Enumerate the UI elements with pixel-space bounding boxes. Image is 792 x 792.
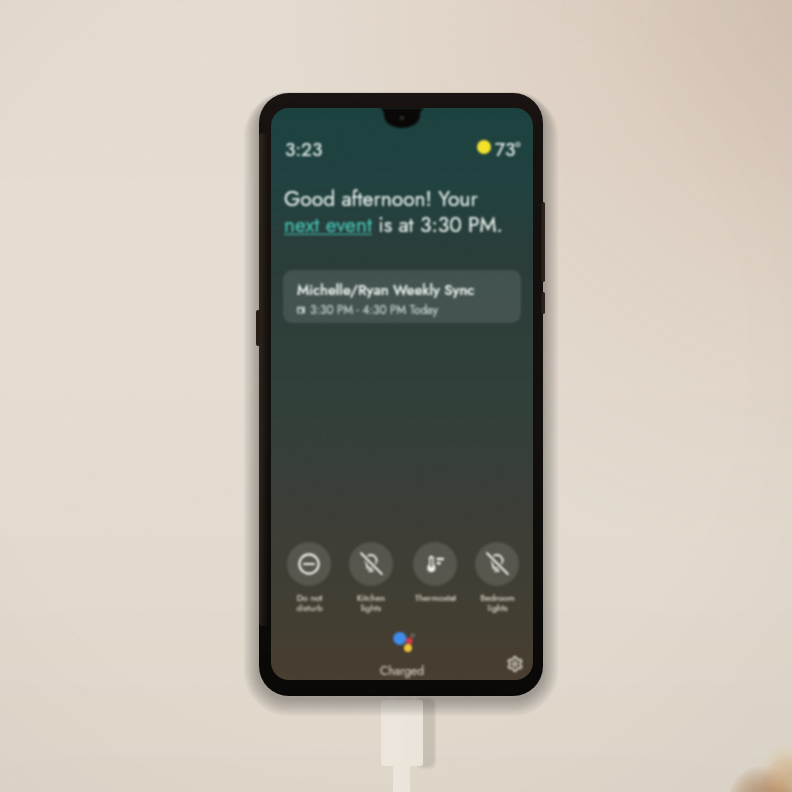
staticText: Good afternoon! Your — [284, 184, 478, 214]
button[interactable]: next event — [284, 210, 372, 240]
button[interactable]: Kitchen lights — [340, 542, 402, 615]
button[interactable]: Thermostat — [404, 542, 466, 604]
button[interactable]: Do not disturb — [278, 542, 340, 615]
button[interactable]: Michelle/Ryan Weekly Sync — [283, 270, 521, 323]
staticText: Kitchen lights — [357, 591, 385, 615]
staticText: Do not disturb — [296, 591, 323, 615]
staticText: 3:23 — [285, 136, 323, 163]
staticText: Bedroom lights — [480, 591, 515, 615]
button[interactable]: Bedroom lights — [466, 542, 528, 615]
staticText: Michelle/Ryan Weekly Sync — [297, 279, 475, 300]
staticText: 73° — [495, 136, 521, 163]
staticText: 3:30 PM - 4:30 PM Today — [310, 301, 438, 318]
button[interactable]: Settings — [504, 653, 526, 675]
button[interactable]: Google Assistant — [387, 625, 419, 657]
staticText: Thermostat — [415, 591, 456, 604]
staticText: Charged — [380, 662, 425, 679]
staticText: is at 3:30 PM. — [372, 210, 503, 240]
